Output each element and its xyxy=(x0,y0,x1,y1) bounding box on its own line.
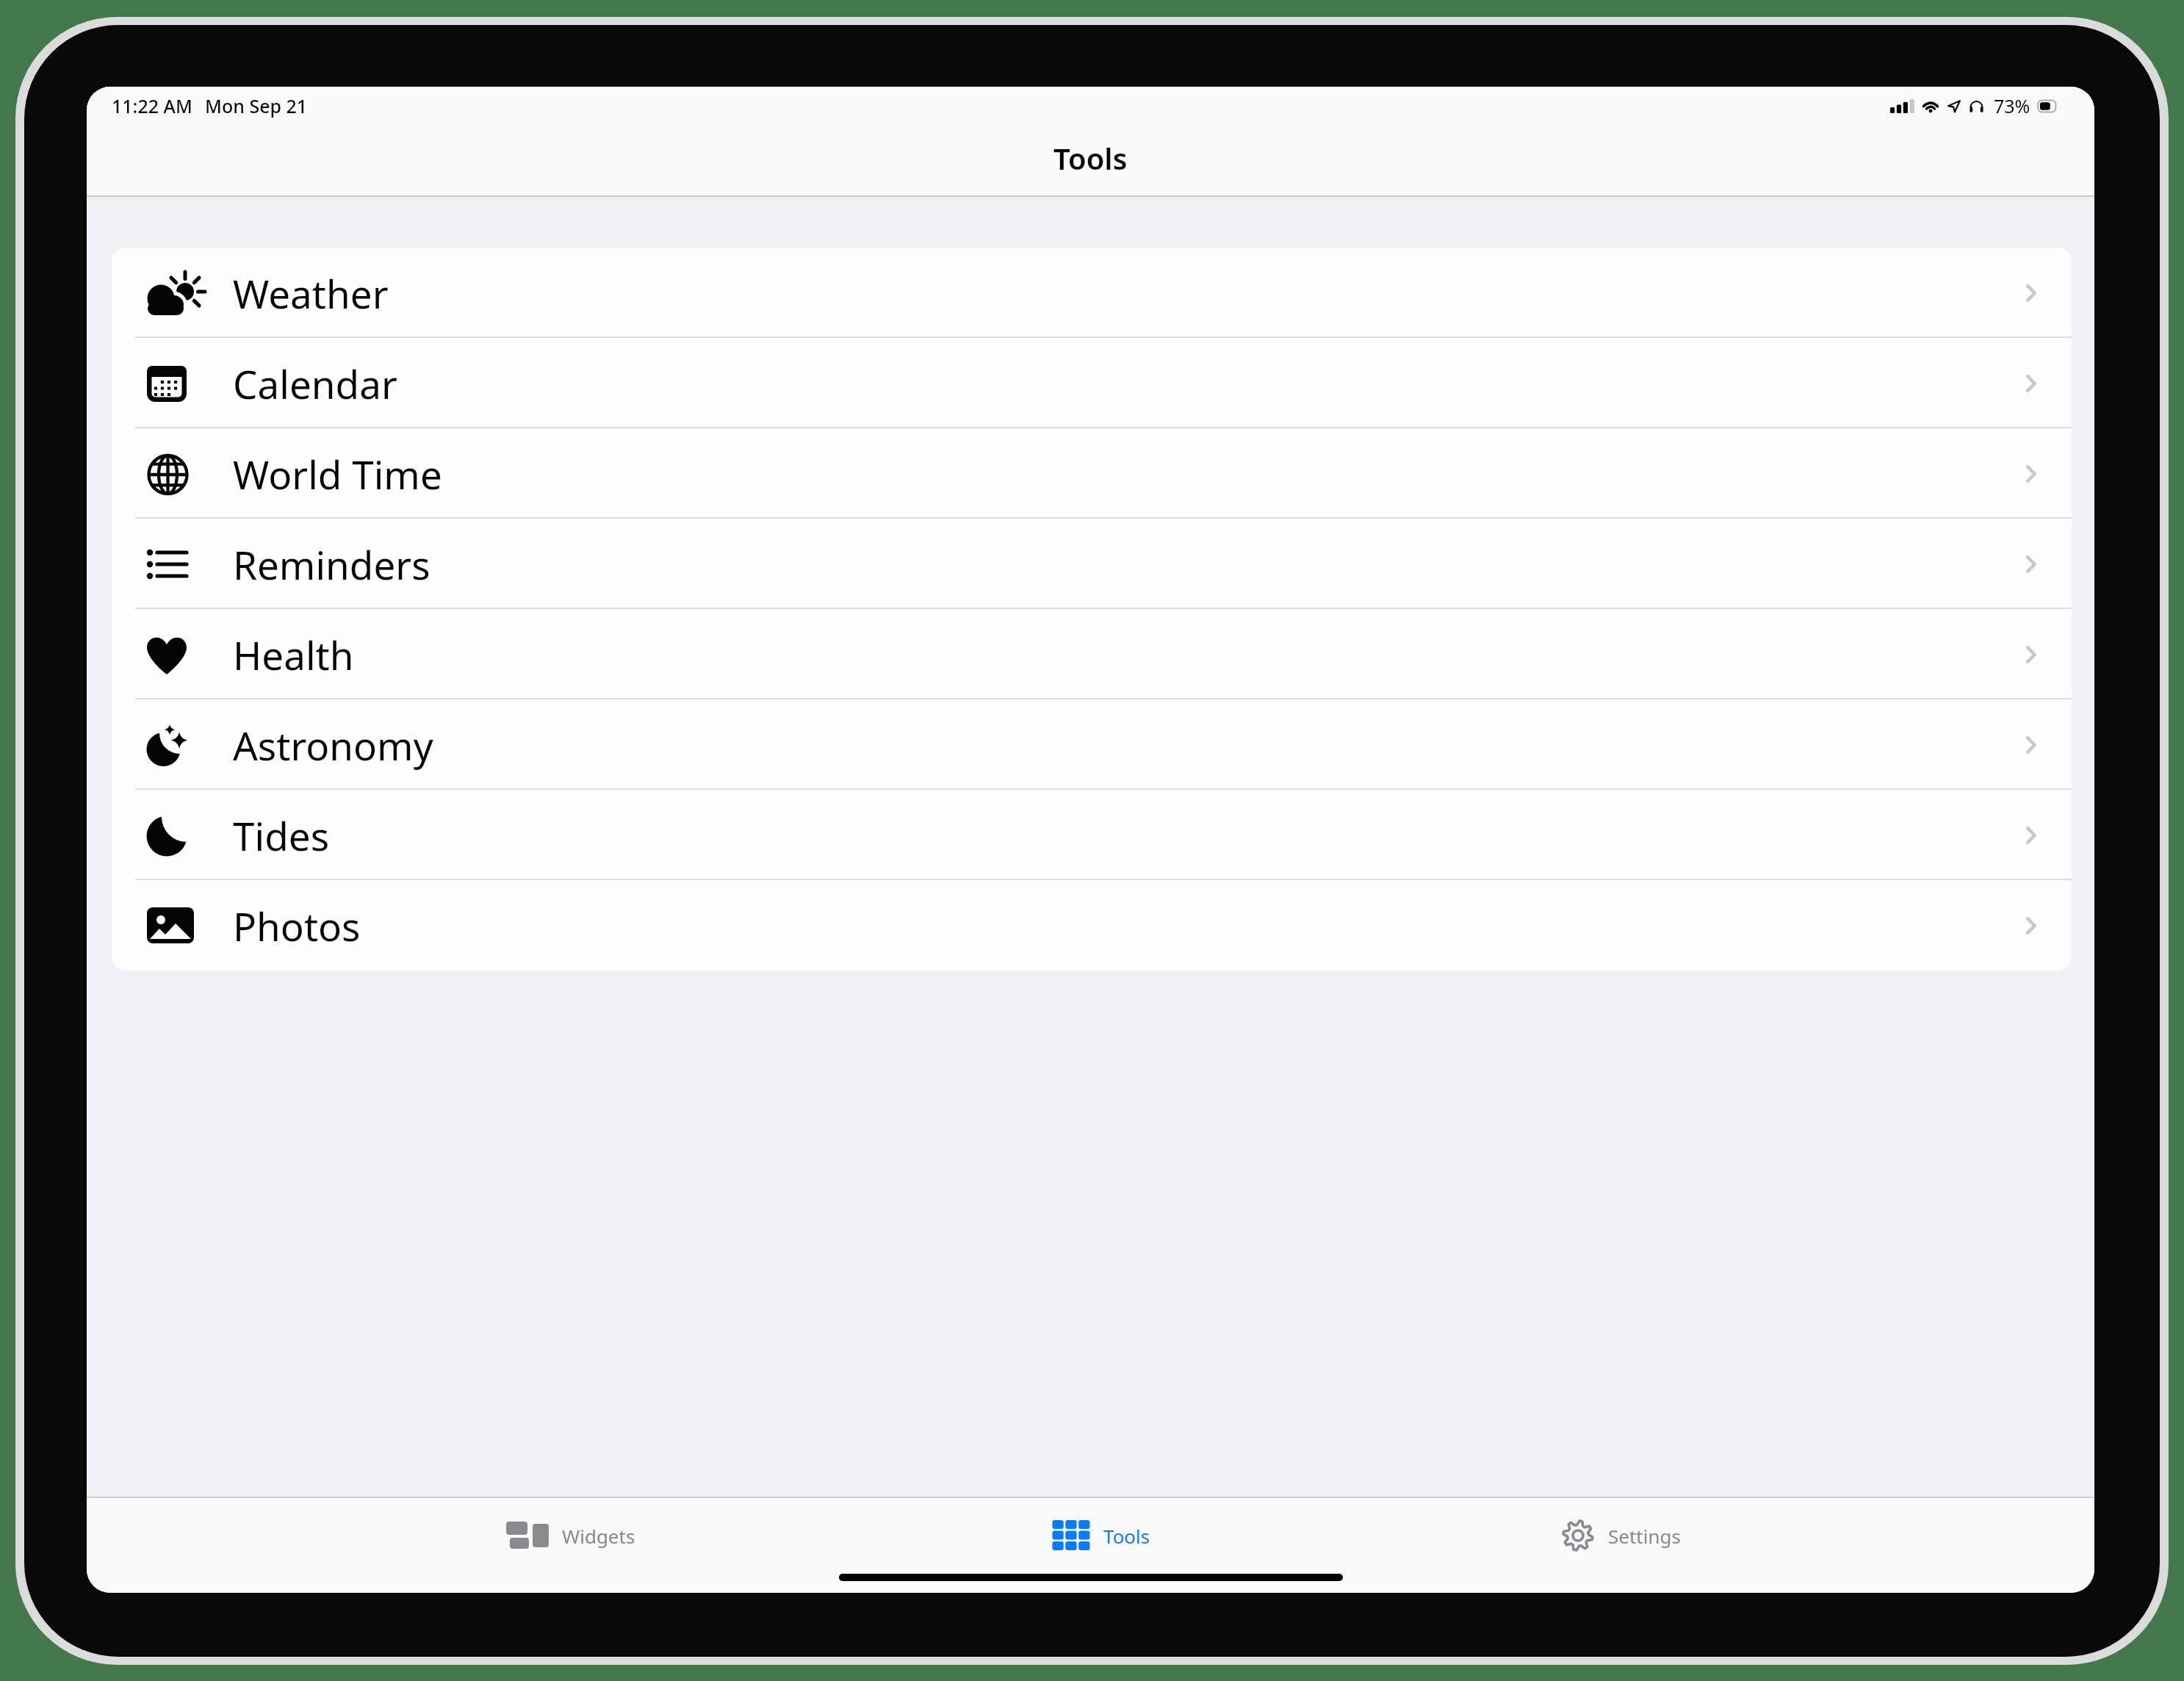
button[interactable]: Photos xyxy=(112,880,2072,971)
staticText: Widgets xyxy=(562,1523,635,1549)
button[interactable]: Settings xyxy=(1459,1506,1782,1565)
button[interactable]: Health xyxy=(112,609,2072,699)
staticText: World Time xyxy=(233,447,2026,500)
staticText: Weather xyxy=(233,267,2026,320)
staticText: Settings xyxy=(1608,1523,1681,1549)
staticText: Photos xyxy=(233,899,2026,952)
button[interactable]: Astronomy xyxy=(112,699,2072,790)
staticText: Tools xyxy=(1053,138,1128,178)
staticText: Reminders xyxy=(233,538,2026,591)
button[interactable]: Widgets xyxy=(409,1506,732,1565)
button[interactable]: Reminders xyxy=(112,519,2072,609)
staticText: Calendar xyxy=(233,357,2026,410)
button[interactable]: World Time xyxy=(112,428,2072,519)
staticText: Tools xyxy=(1103,1523,1150,1549)
button[interactable]: Calendar xyxy=(112,338,2072,428)
staticText: 11:22 AM xyxy=(112,93,192,118)
button[interactable]: Tides xyxy=(112,790,2072,880)
staticText: Health xyxy=(233,628,2026,681)
button[interactable]: Tools xyxy=(940,1506,1263,1565)
staticText: Tides xyxy=(233,809,2026,862)
staticText: Astronomy xyxy=(233,719,2026,771)
button[interactable]: Weather xyxy=(112,248,2072,338)
staticText: Mon Sep 21 xyxy=(205,93,308,118)
staticText: 73% xyxy=(1994,93,2030,118)
